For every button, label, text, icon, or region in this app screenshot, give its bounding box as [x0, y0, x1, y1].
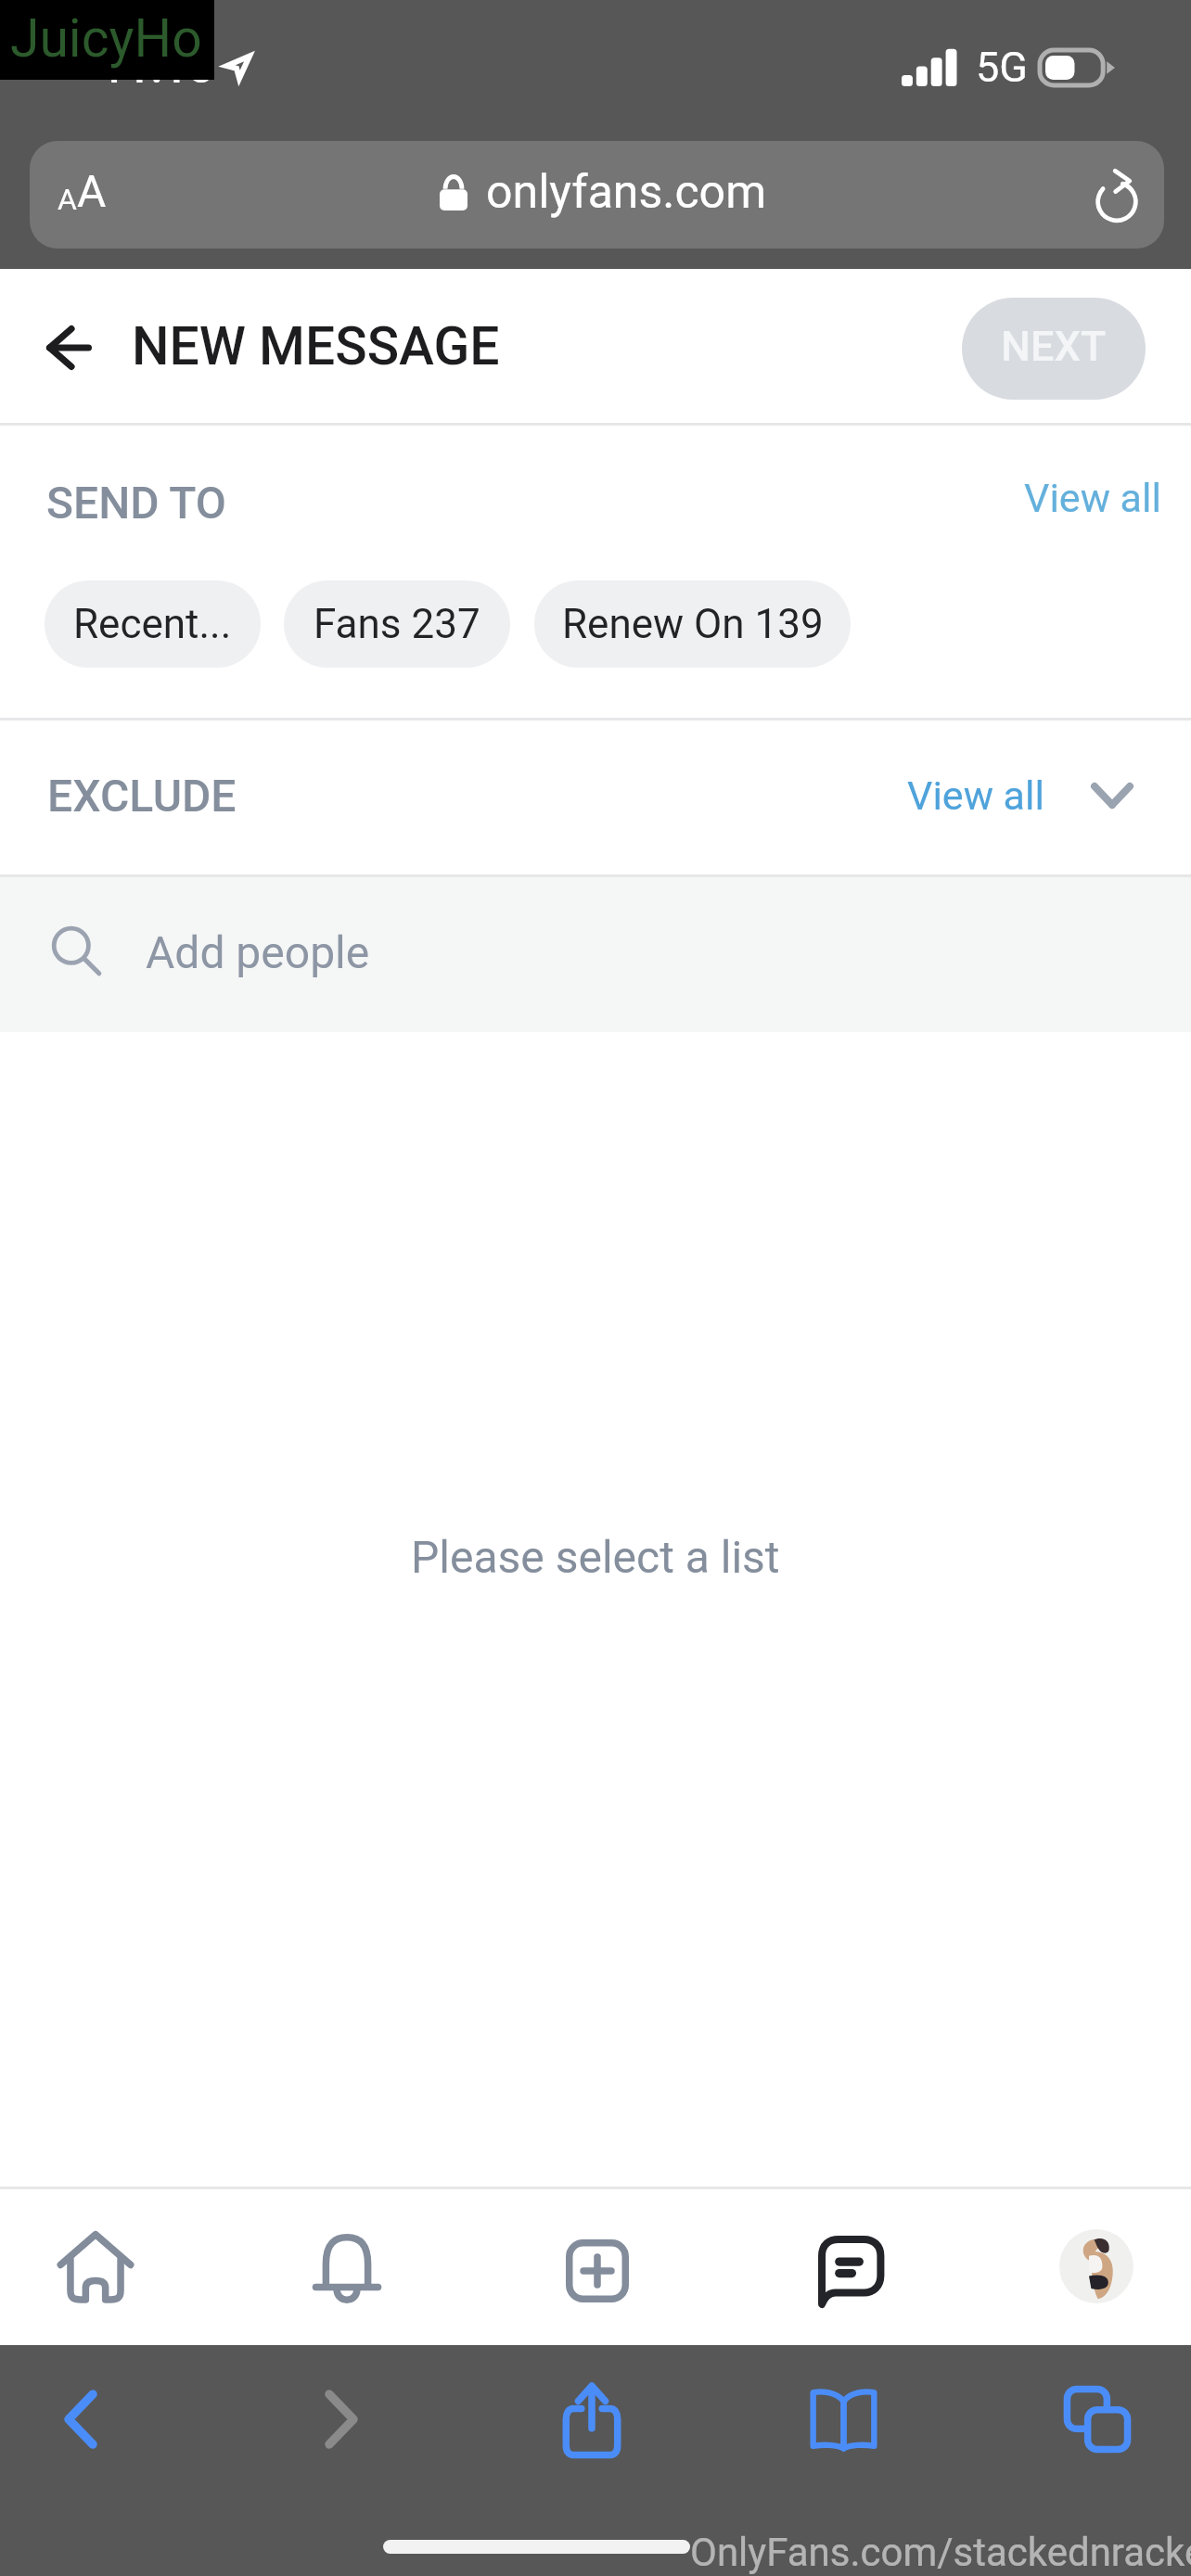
button[interactable]: Profile	[1041, 2211, 1152, 2322]
staticText: Recent...	[73, 600, 232, 648]
staticText: View all	[1024, 475, 1161, 521]
button[interactable]: Back	[28, 300, 113, 392]
button[interactable]: Add people	[0, 877, 1191, 1032]
staticText: Please select a list	[411, 1531, 780, 1583]
button[interactable]: New post	[542, 2211, 653, 2322]
button[interactable]: Fans 237	[284, 580, 510, 668]
staticText: EXCLUDE	[47, 770, 237, 822]
button[interactable]: View all	[1024, 475, 1161, 521]
button[interactable]: Forward	[286, 2364, 397, 2475]
staticText: SEND TO	[46, 477, 226, 529]
staticText: Add people	[146, 926, 370, 978]
button[interactable]: Recent...	[45, 580, 261, 668]
button[interactable]: Home	[40, 2211, 151, 2322]
staticText: NEXT	[1001, 322, 1107, 371]
staticText: onlyfans.com	[486, 165, 766, 220]
other: Reload	[1095, 169, 1138, 221]
button[interactable]: Share	[536, 2364, 647, 2475]
button[interactable]: Renew On 139	[534, 580, 851, 668]
staticText: View all	[907, 772, 1044, 819]
staticText: Fans 237	[314, 600, 480, 648]
button[interactable]: Messages	[792, 2211, 903, 2322]
button[interactable]: Back	[25, 2364, 136, 2475]
staticText: 5G	[976, 43, 1028, 92]
button[interactable]: Notifications	[291, 2211, 403, 2322]
button[interactable]: Bookmarks	[788, 2364, 899, 2475]
staticText: A	[58, 182, 77, 217]
button[interactable]: Tabs	[1042, 2364, 1153, 2475]
staticText: OnlyFans.com/stackednracked	[690, 2530, 1191, 2575]
staticText: A	[77, 165, 107, 217]
staticText: Renew On 139	[562, 600, 824, 648]
button[interactable]: View all	[907, 772, 1044, 819]
button[interactable]: NEXT	[962, 298, 1146, 400]
staticText: 11:15	[100, 41, 213, 93]
staticText: NEW MESSAGE	[132, 315, 500, 377]
button[interactable]: Expand	[1075, 759, 1149, 833]
staticText: JuicyHo	[10, 7, 202, 70]
button[interactable]: A	[30, 141, 1164, 249]
